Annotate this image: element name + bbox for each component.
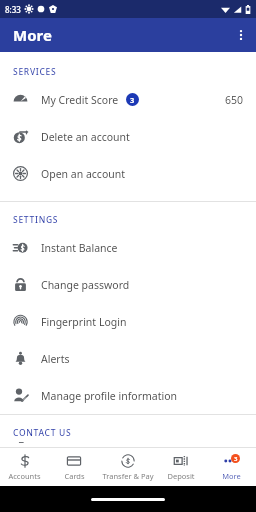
- button[interactable]: Delete an account: [0, 118, 256, 155]
- staticText: SETTINGS: [13, 214, 59, 226]
- staticText: CONTACT US: [13, 427, 72, 439]
- staticText: Delete an account: [41, 130, 130, 144]
- staticText: More: [13, 25, 52, 45]
- button[interactable]: Change password: [0, 266, 256, 303]
- staticText: Fingerprint Login: [41, 315, 127, 329]
- button[interactable]: Alerts: [0, 340, 256, 377]
- staticText: Manage profile information: [41, 389, 178, 403]
- staticText: 3: [234, 455, 238, 463]
- button[interactable]: Cards: [49, 454, 99, 481]
- button[interactable]: My Credit Score: [0, 81, 256, 118]
- button[interactable]: 3: [206, 454, 256, 481]
- button[interactable]: Transfer & Pay: [99, 454, 156, 481]
- staticText: More: [222, 471, 241, 481]
- button[interactable]: Fingerprint Login: [0, 303, 256, 340]
- staticText: Deposit: [167, 471, 195, 481]
- staticText: Cards: [64, 471, 85, 481]
- staticText: Open an account: [41, 167, 125, 181]
- staticText: 8:33: [5, 4, 21, 15]
- button[interactable]: Accounts: [0, 454, 49, 481]
- staticText: SERVICES: [13, 66, 57, 78]
- staticText: 3: [130, 95, 135, 105]
- staticText: Change password: [41, 278, 130, 292]
- button[interactable]: Open an account: [0, 155, 256, 192]
- staticText: Alerts: [41, 352, 70, 366]
- staticText: Transfer & Pay: [102, 471, 154, 481]
- button[interactable]: Deposit: [156, 454, 206, 481]
- button[interactable]: More options: [226, 20, 256, 50]
- staticText: My Credit Score: [41, 93, 119, 107]
- staticText: 650: [225, 93, 244, 107]
- staticText: Instant Balance: [41, 241, 118, 255]
- button[interactable]: Instant Balance: [0, 229, 256, 266]
- staticText: Accounts: [8, 471, 41, 481]
- button[interactable]: Manage profile information: [0, 377, 256, 414]
